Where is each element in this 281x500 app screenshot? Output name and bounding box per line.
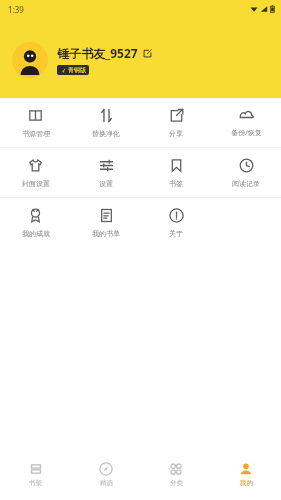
staticText: 书签 [169,179,183,188]
button[interactable]: 替换净化 [71,98,141,147]
button[interactable]: 我的 [211,452,281,496]
button[interactable]: 锤子书友_9527 [0,42,281,78]
button[interactable]: 封面设置 [0,148,71,197]
button[interactable]: 备份/恢复 [211,98,281,147]
staticText: 我的 [240,479,253,487]
button[interactable]: 书架 [0,452,71,496]
staticText: 替换净化 [92,129,120,138]
staticText: 分类 [170,479,183,487]
staticText: 青铜版 [68,66,86,74]
staticText: 书源管理 [22,129,50,138]
button[interactable]: 阅读记录 [211,148,281,197]
staticText: 备份/恢复 [231,128,262,138]
staticText: 设置 [99,179,113,188]
button[interactable]: 我的书单 [71,198,141,247]
button[interactable]: 青铜版 [57,65,89,75]
staticText: 1:39 [8,4,24,15]
button[interactable]: 设置 [71,148,141,197]
staticText: 精选 [100,479,113,487]
button[interactable]: 书签 [141,148,211,197]
button[interactable]: 分享 [141,98,211,147]
staticText: 分享 [169,129,183,138]
staticText: 我的书单 [92,229,120,238]
button[interactable]: 书源管理 [0,98,71,147]
staticText: 锤子书友_9527 [57,45,138,61]
button[interactable]: 我的成就 [0,198,71,247]
button[interactable]: 分类 [141,452,211,496]
staticText: 封面设置 [22,179,50,188]
staticText: 关于 [169,229,183,238]
staticText: 书架 [29,479,42,487]
button[interactable]: Edit profile [143,49,152,58]
staticText: 阅读记录 [232,179,260,188]
button[interactable]: 精选 [71,452,141,496]
button[interactable]: 关于 [141,198,211,247]
staticText: 我的成就 [22,229,50,238]
